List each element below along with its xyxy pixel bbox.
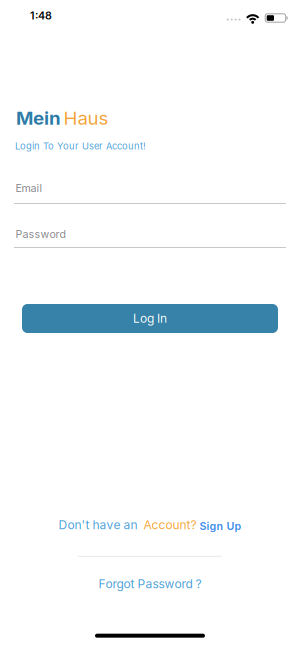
staticText: Email (15, 182, 42, 194)
staticText: Log In (133, 311, 167, 326)
staticText: 1:48 (30, 9, 52, 22)
button[interactable]: Sign Up (199, 519, 241, 531)
staticText: Login To Your User Account! (15, 140, 146, 151)
staticText: Forgot Password ? (98, 577, 201, 591)
staticText: Sign Up (199, 520, 241, 532)
staticText: Don't have an (58, 518, 137, 532)
staticText: Account? (137, 518, 199, 532)
button[interactable]: Password (14, 220, 286, 248)
staticText: Password (15, 228, 66, 240)
staticText: Haus (63, 107, 108, 129)
button[interactable]: Forgot Password ? (80, 574, 220, 594)
button[interactable]: Log In (22, 304, 278, 333)
staticText: Mein (16, 107, 61, 129)
button[interactable]: Email (14, 172, 286, 204)
